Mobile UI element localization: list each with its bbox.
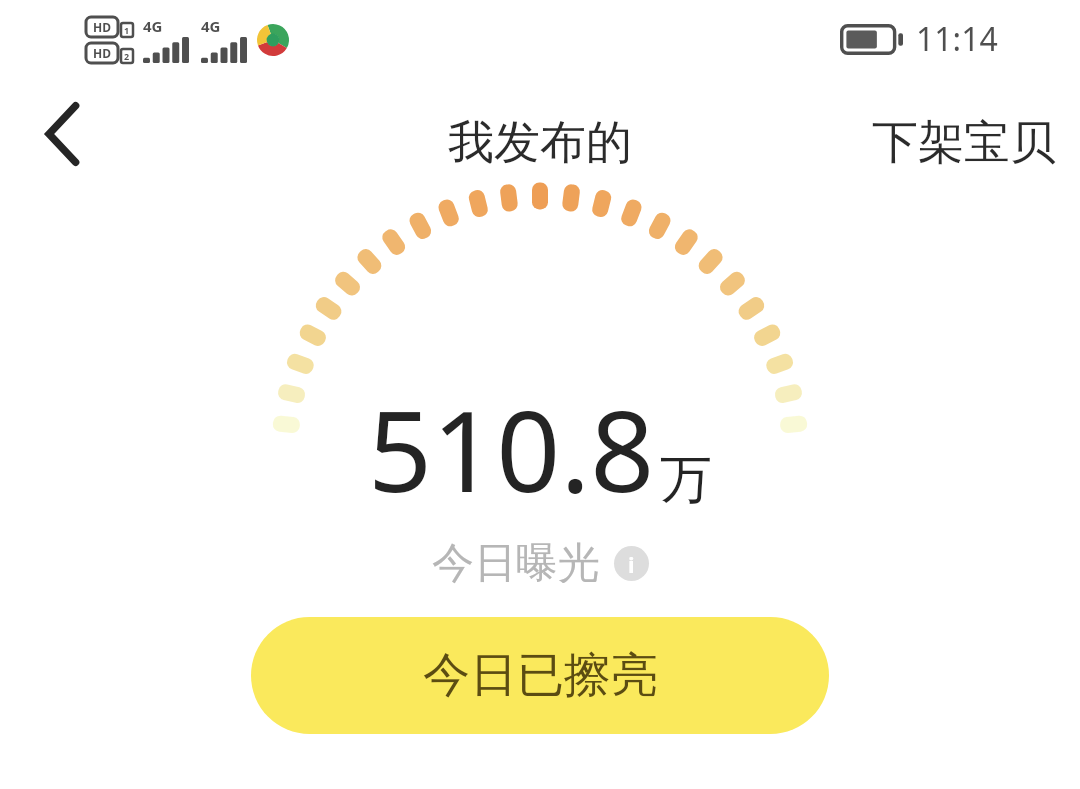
staticText: 万	[660, 447, 712, 513]
staticText: 11:14	[916, 17, 998, 61]
staticText: 4G	[201, 16, 221, 36]
staticText: 今日已擦亮	[423, 646, 658, 705]
staticText: 2	[124, 50, 130, 62]
staticText: 下架宝贝	[872, 114, 1056, 172]
button[interactable]: 下架宝贝	[848, 102, 1080, 184]
button[interactable]: 今日已擦亮	[251, 617, 829, 734]
button[interactable]: 今日曝光	[426, 531, 655, 596]
staticText: 今日曝光	[432, 537, 600, 590]
staticText: 4G	[143, 16, 163, 36]
staticText: 1	[124, 24, 130, 36]
button[interactable]: Back	[24, 96, 100, 172]
staticText: 我发布的	[448, 114, 632, 172]
staticText: 510.8	[368, 372, 655, 525]
staticText: HD	[93, 19, 111, 35]
other: Info	[614, 546, 649, 581]
staticText: i	[628, 549, 635, 579]
staticText: HD	[93, 45, 111, 61]
